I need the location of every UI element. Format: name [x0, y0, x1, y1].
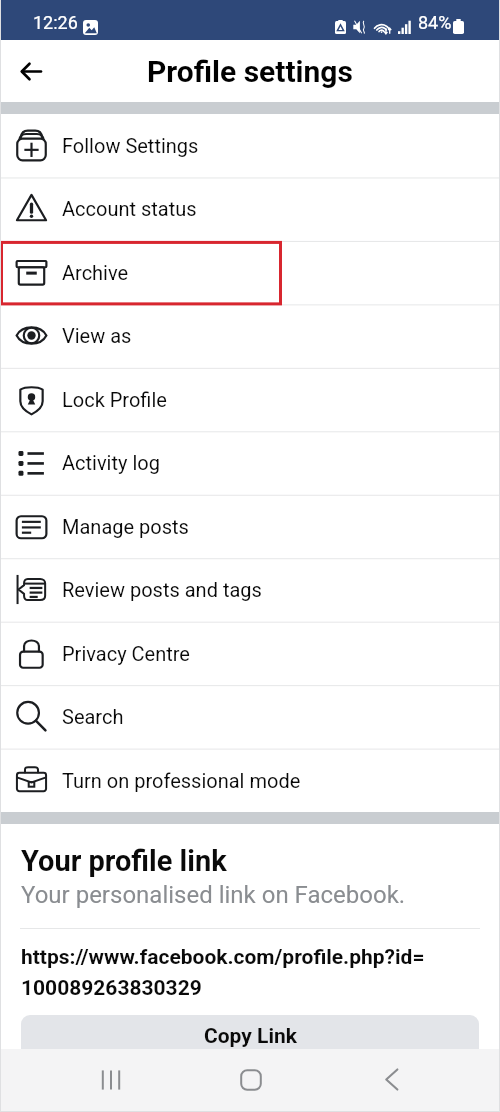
staticText: Review posts and tags: [62, 578, 262, 601]
button[interactable]: Search: [0, 685, 500, 748]
button[interactable]: Copy Link: [21, 1015, 479, 1058]
staticText: Privacy Centre: [62, 642, 190, 665]
button[interactable]: Manage posts: [0, 495, 500, 558]
staticText: Your profile link: [21, 844, 227, 878]
staticText: Search: [62, 705, 124, 728]
button[interactable]: Turn on professional mode: [0, 749, 500, 812]
button[interactable]: Follow Settings: [0, 114, 500, 177]
button[interactable]: Recent apps: [86, 1055, 135, 1104]
button[interactable]: Back: [11, 51, 51, 91]
button[interactable]: Lock Profile: [0, 368, 500, 431]
staticText: Follow Settings: [62, 134, 199, 157]
button[interactable]: Review posts and tags: [0, 558, 500, 621]
staticText: 84%: [418, 12, 452, 33]
button[interactable]: Account status: [0, 177, 500, 240]
button[interactable]: View as: [0, 304, 500, 367]
staticText: Manage posts: [62, 515, 189, 538]
button[interactable]: Archive: [0, 241, 500, 304]
staticText: Turn on professional mode: [62, 769, 301, 792]
staticText: Your personalised link on Facebook.: [21, 881, 406, 909]
button[interactable]: Home: [226, 1055, 275, 1104]
staticText: Account status: [62, 197, 197, 220]
staticText: 12:26: [33, 12, 78, 33]
button[interactable]: Back: [367, 1055, 416, 1104]
staticText: Activity log: [62, 451, 160, 474]
button[interactable]: Privacy Centre: [0, 622, 500, 685]
staticText: View as: [62, 324, 132, 347]
staticText: Profile settings: [147, 54, 353, 89]
staticText: Archive: [62, 261, 129, 284]
staticText: Copy Link: [204, 1024, 297, 1049]
staticText: Lock Profile: [62, 388, 167, 411]
button[interactable]: Activity log: [0, 431, 500, 494]
staticText: https://www.facebook.com/profile.php?id=…: [21, 945, 481, 1000]
